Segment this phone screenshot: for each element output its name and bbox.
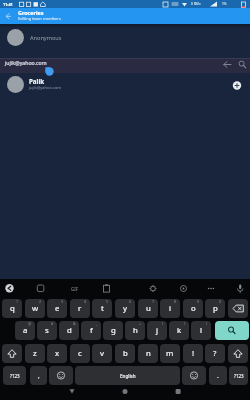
staticText: ?123 — [10, 373, 20, 379]
button[interactable]: o — [183, 299, 203, 318]
button[interactable] — [49, 366, 73, 385]
button[interactable] — [1, 9, 16, 23]
button[interactable] — [146, 281, 161, 296]
button[interactable] — [236, 58, 250, 72]
staticText: f — [90, 325, 93, 336]
button[interactable] — [228, 299, 248, 318]
staticText: @ — [28, 321, 32, 326]
button[interactable]: n — [138, 344, 158, 363]
button[interactable]: a — [15, 321, 35, 340]
button[interactable] — [69, 281, 84, 296]
staticText: v — [100, 348, 104, 359]
button[interactable]: English — [75, 366, 180, 385]
staticText: GIF — [71, 286, 78, 292]
staticText: w — [32, 303, 39, 314]
staticText: q — [10, 303, 15, 314]
staticText: ) — [184, 321, 186, 326]
button[interactable]: u — [138, 299, 158, 318]
button[interactable]: . — [209, 366, 227, 385]
button[interactable]: ?123 — [229, 366, 248, 385]
staticText: n — [146, 348, 151, 359]
staticText: jujik@yahoo.com — [29, 85, 62, 90]
button[interactable] — [228, 344, 248, 363]
button[interactable]: y — [115, 299, 135, 318]
button[interactable]: , — [30, 366, 47, 385]
staticText: _ — [96, 321, 98, 326]
staticText: p — [213, 303, 218, 314]
staticText: 3 — [61, 299, 64, 304]
button[interactable] — [230, 78, 245, 93]
staticText: ?123 — [234, 373, 244, 379]
button[interactable]: h — [125, 321, 145, 340]
staticText: 1% — [222, 2, 227, 6]
staticText: b — [123, 348, 128, 359]
button[interactable]: k — [169, 321, 189, 340]
button[interactable]: e — [47, 299, 67, 318]
staticText: u — [146, 303, 151, 314]
staticText: 2 — [39, 299, 42, 304]
button[interactable] — [113, 385, 137, 398]
button[interactable]: l — [191, 321, 211, 340]
staticText: & — [73, 321, 76, 326]
staticText: ( — [162, 321, 164, 326]
staticText: ? — [213, 348, 217, 359]
staticText: m — [166, 348, 174, 359]
button[interactable]: m — [160, 344, 180, 363]
button[interactable]: b — [115, 344, 135, 363]
button[interactable] — [215, 321, 249, 340]
button[interactable] — [220, 58, 234, 72]
staticText: Groceries — [18, 9, 44, 16]
button[interactable] — [166, 385, 190, 398]
button[interactable]: q — [2, 299, 22, 318]
button[interactable] — [0, 74, 250, 95]
staticText: e — [55, 303, 60, 314]
button[interactable] — [60, 385, 84, 398]
button[interactable] — [0, 58, 250, 73]
staticText: x — [55, 348, 60, 359]
button[interactable] — [33, 281, 48, 296]
staticText: 4 — [84, 299, 87, 304]
button[interactable]: p — [205, 299, 225, 318]
staticText: 8 — [174, 299, 177, 304]
button[interactable]: x — [47, 344, 67, 363]
button[interactable] — [2, 344, 22, 363]
button[interactable] — [176, 281, 191, 296]
button[interactable]: w — [25, 299, 45, 318]
staticText: 6 — [129, 299, 132, 304]
button[interactable]: ! — [183, 344, 203, 363]
button[interactable]: c — [70, 344, 90, 363]
button[interactable] — [233, 281, 248, 296]
staticText: Palik — [29, 77, 45, 85]
staticText: k — [177, 325, 182, 336]
staticText: 7 — [152, 299, 155, 304]
button[interactable]: r — [70, 299, 90, 318]
staticText: a — [23, 325, 28, 336]
button[interactable]: z — [25, 344, 45, 363]
button[interactable] — [182, 366, 206, 385]
button[interactable]: t — [92, 299, 112, 318]
button[interactable]: v — [92, 344, 112, 363]
staticText: h — [133, 325, 138, 336]
button[interactable]: s — [37, 321, 57, 340]
button[interactable]: ? — [205, 344, 225, 363]
staticText: 11:41 — [3, 2, 13, 7]
button[interactable]: f — [81, 321, 101, 340]
button[interactable]: ?123 — [3, 366, 26, 385]
staticText: 0 KB/s — [191, 2, 201, 6]
button[interactable]: i — [160, 299, 180, 318]
button[interactable]: g — [103, 321, 123, 340]
staticText: g — [111, 325, 116, 336]
staticText: 9 — [197, 299, 200, 304]
staticText: / — [206, 321, 208, 326]
button[interactable] — [2, 281, 17, 296]
button[interactable]: j — [147, 321, 167, 340]
staticText: 0 — [219, 299, 222, 304]
button[interactable] — [204, 281, 219, 296]
button[interactable] — [0, 27, 250, 48]
staticText: r — [78, 303, 82, 314]
button[interactable] — [100, 281, 115, 296]
staticText: Anonymous — [30, 34, 62, 42]
staticText: . — [217, 371, 219, 380]
button[interactable]: d — [59, 321, 79, 340]
staticText: j — [156, 325, 159, 336]
